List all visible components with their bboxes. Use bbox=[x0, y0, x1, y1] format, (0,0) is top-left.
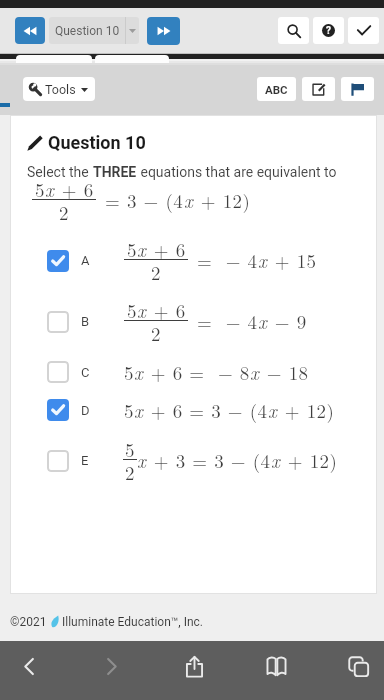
staticText: Select the bbox=[27, 164, 93, 180]
button[interactable]: C bbox=[27, 361, 371, 383]
staticText: 5 bbox=[124, 397, 134, 424]
staticText: 5 bbox=[124, 359, 134, 386]
button[interactable]: Flag question bbox=[341, 77, 374, 101]
button[interactable]: Next question bbox=[147, 17, 180, 45]
staticText: x bbox=[258, 247, 268, 274]
button[interactable]: B bbox=[27, 303, 371, 340]
button[interactable] bbox=[95, 55, 169, 63]
staticText: + 6 bbox=[147, 297, 186, 324]
staticText: Tools bbox=[45, 82, 76, 97]
staticText: 2 bbox=[151, 259, 161, 286]
staticText: Illuminate Education™, Inc. bbox=[62, 615, 203, 629]
button[interactable]: Annotate bbox=[302, 77, 335, 101]
staticText: 5 bbox=[127, 236, 137, 263]
staticText: D bbox=[81, 403, 90, 418]
staticText: + 6 bbox=[55, 176, 94, 203]
staticText: = − 4 bbox=[197, 308, 258, 335]
staticText: 5 bbox=[125, 436, 135, 463]
staticText: B bbox=[81, 314, 90, 329]
button[interactable]: Share bbox=[169, 641, 219, 692]
staticText: THREE bbox=[93, 164, 137, 180]
staticText: x bbox=[271, 447, 281, 474]
button[interactable]: E bbox=[27, 442, 371, 479]
staticText: x bbox=[258, 308, 268, 335]
staticText: 2 bbox=[151, 320, 161, 347]
staticText: A bbox=[81, 253, 90, 268]
staticText: Question 10 bbox=[55, 24, 120, 38]
staticText: x bbox=[134, 397, 144, 424]
button[interactable]: Forward bbox=[86, 641, 136, 692]
button[interactable]: Tabs bbox=[333, 641, 383, 692]
staticText: ABC bbox=[265, 83, 288, 96]
staticText: E bbox=[81, 453, 89, 468]
staticText: 5 bbox=[35, 176, 45, 203]
staticText: x bbox=[137, 297, 147, 324]
button[interactable]: Bookmarks bbox=[251, 641, 301, 692]
staticText: Question 10 bbox=[48, 132, 146, 153]
staticText: x bbox=[45, 176, 55, 203]
staticText: ? bbox=[326, 25, 331, 37]
staticText: x bbox=[137, 447, 147, 474]
staticText: + 6 bbox=[147, 236, 186, 263]
staticText: x bbox=[184, 187, 194, 214]
button[interactable]: A bbox=[27, 242, 371, 279]
staticText: x bbox=[268, 397, 278, 424]
button[interactable]: Tools bbox=[23, 77, 95, 101]
staticText: x bbox=[250, 359, 260, 386]
button[interactable]: Question 10 bbox=[49, 17, 139, 44]
staticText: + 12) bbox=[278, 397, 335, 424]
staticText: − 9 bbox=[268, 308, 307, 335]
button[interactable]: Back bbox=[4, 641, 54, 692]
staticText: ©2021 bbox=[10, 615, 50, 629]
button[interactable]: Submit bbox=[348, 17, 379, 44]
button[interactable] bbox=[16, 55, 92, 63]
staticText: = 3 − (4 bbox=[105, 187, 184, 214]
staticText: x bbox=[134, 359, 144, 386]
staticText: + 15 bbox=[268, 247, 317, 274]
staticText: + 12) bbox=[194, 187, 251, 214]
staticText: equations that are equivalent to bbox=[137, 164, 337, 180]
staticText: + 6 = − 8 bbox=[144, 359, 250, 386]
staticText: 2 bbox=[59, 199, 69, 226]
staticText: 2 bbox=[125, 459, 135, 486]
button[interactable]: ABC keyboard bbox=[257, 77, 296, 101]
button[interactable]: Previous question bbox=[15, 17, 45, 44]
staticText: + 3 = 3 − (4 bbox=[147, 447, 271, 474]
button[interactable]: Help bbox=[313, 17, 344, 44]
staticText: 5 bbox=[127, 297, 137, 324]
staticText: − 18 bbox=[260, 359, 309, 386]
staticText: C bbox=[81, 365, 90, 380]
staticText: + 12) bbox=[281, 447, 338, 474]
staticText: = − 4 bbox=[197, 247, 258, 274]
button[interactable]: D bbox=[27, 399, 371, 421]
button[interactable]: Search bbox=[278, 17, 309, 44]
staticText: + 6 = 3 − (4 bbox=[144, 397, 268, 424]
staticText: x bbox=[137, 236, 147, 263]
